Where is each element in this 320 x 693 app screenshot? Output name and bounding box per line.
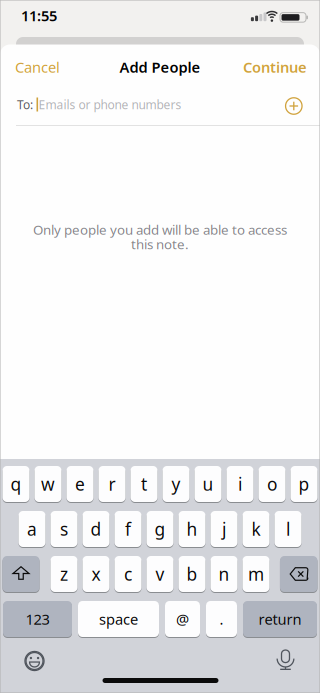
staticText: h	[186, 517, 197, 540]
staticText: z	[60, 562, 68, 585]
button[interactable]: f	[114, 510, 141, 547]
button[interactable]: space	[78, 600, 159, 637]
staticText: o	[267, 472, 277, 495]
staticText: j	[222, 517, 226, 540]
staticText: return	[258, 609, 301, 629]
staticText: q	[10, 472, 21, 495]
button[interactable]: x	[82, 555, 109, 592]
staticText: f	[125, 517, 131, 540]
staticText: To:	[17, 96, 33, 112]
staticText: i	[238, 472, 242, 495]
button[interactable]: 123	[3, 600, 72, 637]
button[interactable]: j	[210, 510, 237, 547]
button[interactable]: z	[50, 555, 77, 592]
button[interactable]: m	[242, 555, 269, 592]
staticText: Add People	[119, 57, 200, 77]
button[interactable]: q	[2, 465, 29, 502]
button[interactable]: Shift	[2, 555, 39, 592]
button[interactable]: Emoji	[19, 646, 49, 676]
button[interactable]: Delete	[280, 555, 317, 592]
staticText: space	[99, 609, 138, 629]
button[interactable]: Dictation	[270, 645, 300, 675]
button[interactable]: @	[165, 600, 200, 637]
staticText: v	[155, 562, 164, 585]
staticText: this note.	[131, 235, 189, 253]
staticText: Emails or phone numbers	[38, 96, 181, 112]
staticText: s	[60, 517, 68, 540]
staticText: m	[248, 562, 264, 585]
button[interactable]: d	[82, 510, 109, 547]
button[interactable]: r	[98, 465, 125, 502]
staticText: d	[90, 517, 101, 540]
button[interactable]: n	[210, 555, 237, 592]
staticText: u	[202, 472, 213, 495]
button[interactable]: s	[50, 510, 77, 547]
button[interactable]: o	[258, 465, 285, 502]
staticText: 11:55	[21, 6, 57, 25]
staticText: y	[171, 472, 180, 495]
button[interactable]: Cancel	[15, 52, 60, 82]
staticText: k	[251, 517, 260, 540]
button[interactable]: t	[130, 465, 157, 502]
staticText: a	[27, 517, 37, 540]
button[interactable]: k	[242, 510, 269, 547]
staticText: r	[108, 472, 115, 495]
button[interactable]: l	[274, 510, 301, 547]
staticText: l	[286, 517, 290, 540]
button[interactable]: e	[66, 465, 93, 502]
staticText: b	[186, 562, 197, 585]
staticText: Continue	[243, 57, 307, 77]
staticText: Only people you add will be able to acce…	[33, 221, 287, 238]
staticText: 123	[25, 609, 49, 629]
staticText: .	[219, 609, 223, 629]
button[interactable]: b	[178, 555, 205, 592]
staticText: x	[91, 562, 100, 585]
button[interactable]: y	[162, 465, 189, 502]
staticText: w	[41, 472, 55, 495]
staticText: Cancel	[15, 57, 60, 77]
button[interactable]: Continue	[243, 52, 307, 82]
staticText: c	[124, 562, 132, 585]
button[interactable]: Add contact	[282, 94, 306, 118]
staticText: p	[298, 472, 309, 495]
button[interactable]: u	[194, 465, 221, 502]
button[interactable]: v	[146, 555, 173, 592]
button[interactable]: .	[206, 600, 237, 637]
button[interactable]: g	[146, 510, 173, 547]
staticText: @	[176, 609, 189, 629]
button[interactable]: return	[243, 600, 317, 637]
button[interactable]: h	[178, 510, 205, 547]
button[interactable]: i	[226, 465, 253, 502]
staticText: g	[154, 517, 165, 540]
button[interactable]: p	[290, 465, 317, 502]
staticText: n	[218, 562, 229, 585]
staticText: t	[141, 472, 147, 495]
button[interactable]: To: Emails or phone numbers	[0, 85, 278, 123]
button[interactable]: c	[114, 555, 141, 592]
button[interactable]: w	[34, 465, 61, 502]
staticText: e	[75, 472, 85, 495]
button[interactable]: a	[18, 510, 45, 547]
